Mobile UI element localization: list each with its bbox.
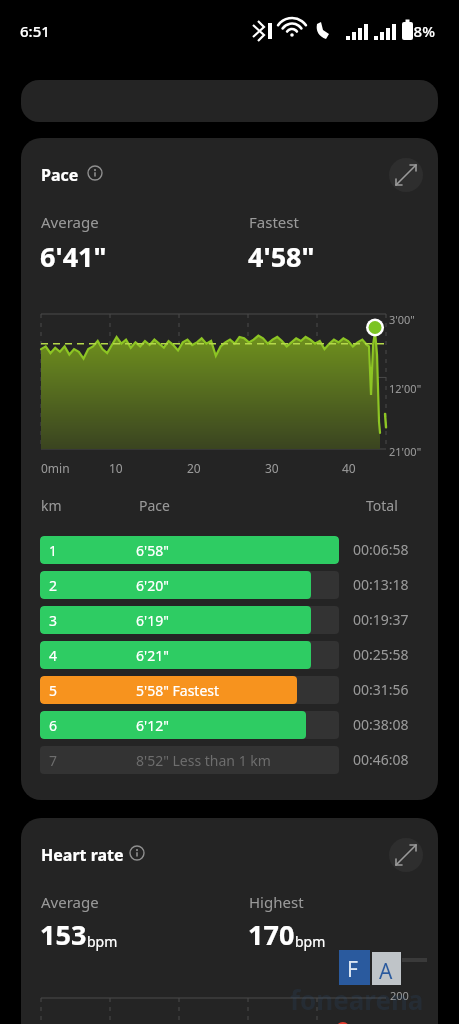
staticText: 3'00" <box>389 312 415 327</box>
staticText: 6'19" <box>136 611 169 630</box>
staticText: 2 <box>49 576 58 595</box>
staticText: Pace <box>41 164 79 186</box>
button[interactable] <box>21 80 438 122</box>
staticText: 5'58" Fastest <box>136 681 220 700</box>
staticText: 00:46:08 <box>353 750 409 769</box>
staticText: fonearena <box>290 982 424 1017</box>
button[interactable]: Expand <box>389 838 423 872</box>
staticText: 21'00" <box>389 444 422 459</box>
button[interactable]: Share <box>350 72 396 118</box>
staticText: 6'20" <box>136 576 169 595</box>
staticText: 6'41" <box>40 238 107 275</box>
staticText: 00:25:58 <box>353 645 409 664</box>
button[interactable]: 3 <box>21 604 438 635</box>
staticText: km <box>41 496 62 515</box>
staticText: 00:19:37 <box>353 610 409 629</box>
staticText: Average <box>41 892 99 912</box>
button[interactable]: Expand <box>389 158 423 192</box>
staticText: 30 <box>265 460 279 476</box>
button[interactable]: 2 <box>21 569 438 600</box>
button[interactable]: Pace <box>21 138 438 800</box>
staticText: bpm <box>295 932 326 951</box>
staticText: 3 <box>49 611 58 630</box>
staticText: A <box>379 957 393 986</box>
staticText: Heart rate <box>41 844 124 866</box>
button[interactable]: Back <box>14 72 62 120</box>
staticText: 6'21" <box>136 646 169 665</box>
button[interactable]: 1 <box>21 534 438 565</box>
staticText: 40 <box>342 460 356 476</box>
staticText: 0min <box>41 460 70 476</box>
staticText: 6'12" <box>136 716 169 735</box>
staticText: Fastest <box>249 212 299 232</box>
staticText: 1 <box>49 541 58 560</box>
staticText: 6'58" <box>136 541 169 560</box>
staticText: 12'00" <box>389 381 422 396</box>
button[interactable]: Heart rate <box>21 818 438 1024</box>
staticText: 6 <box>49 716 58 735</box>
staticText: 4'58" <box>248 238 315 275</box>
staticText: F <box>347 955 358 984</box>
staticText: Highest <box>249 892 304 912</box>
button[interactable]: 6 <box>21 709 438 740</box>
button[interactable]: 7 <box>21 744 438 775</box>
staticText: Total <box>366 496 398 515</box>
staticText: 20 <box>187 460 201 476</box>
staticText: 5 <box>49 681 58 700</box>
staticText: Pace <box>139 496 170 515</box>
staticText: 10 <box>109 460 123 476</box>
staticText: 00:31:56 <box>353 680 409 699</box>
staticText: 200 <box>390 988 409 1003</box>
staticText: 00:06:58 <box>353 540 409 559</box>
staticText: 170 <box>248 916 295 953</box>
staticText: 00:38:08 <box>353 715 409 734</box>
staticText: 8'52" Less than 1 km <box>136 751 271 770</box>
button[interactable]: More options <box>402 72 446 116</box>
button[interactable]: 5 <box>21 674 438 705</box>
staticText: 153 <box>40 916 87 953</box>
button[interactable]: 4 <box>21 639 438 670</box>
staticText: Average <box>41 212 99 232</box>
staticText: 4 <box>49 646 58 665</box>
staticText: bpm <box>87 932 118 951</box>
staticText: 88% <box>405 21 435 41</box>
staticText: 00:13:18 <box>353 575 409 594</box>
staticText: 6:51 <box>20 21 50 41</box>
staticText: 7 <box>49 751 58 770</box>
